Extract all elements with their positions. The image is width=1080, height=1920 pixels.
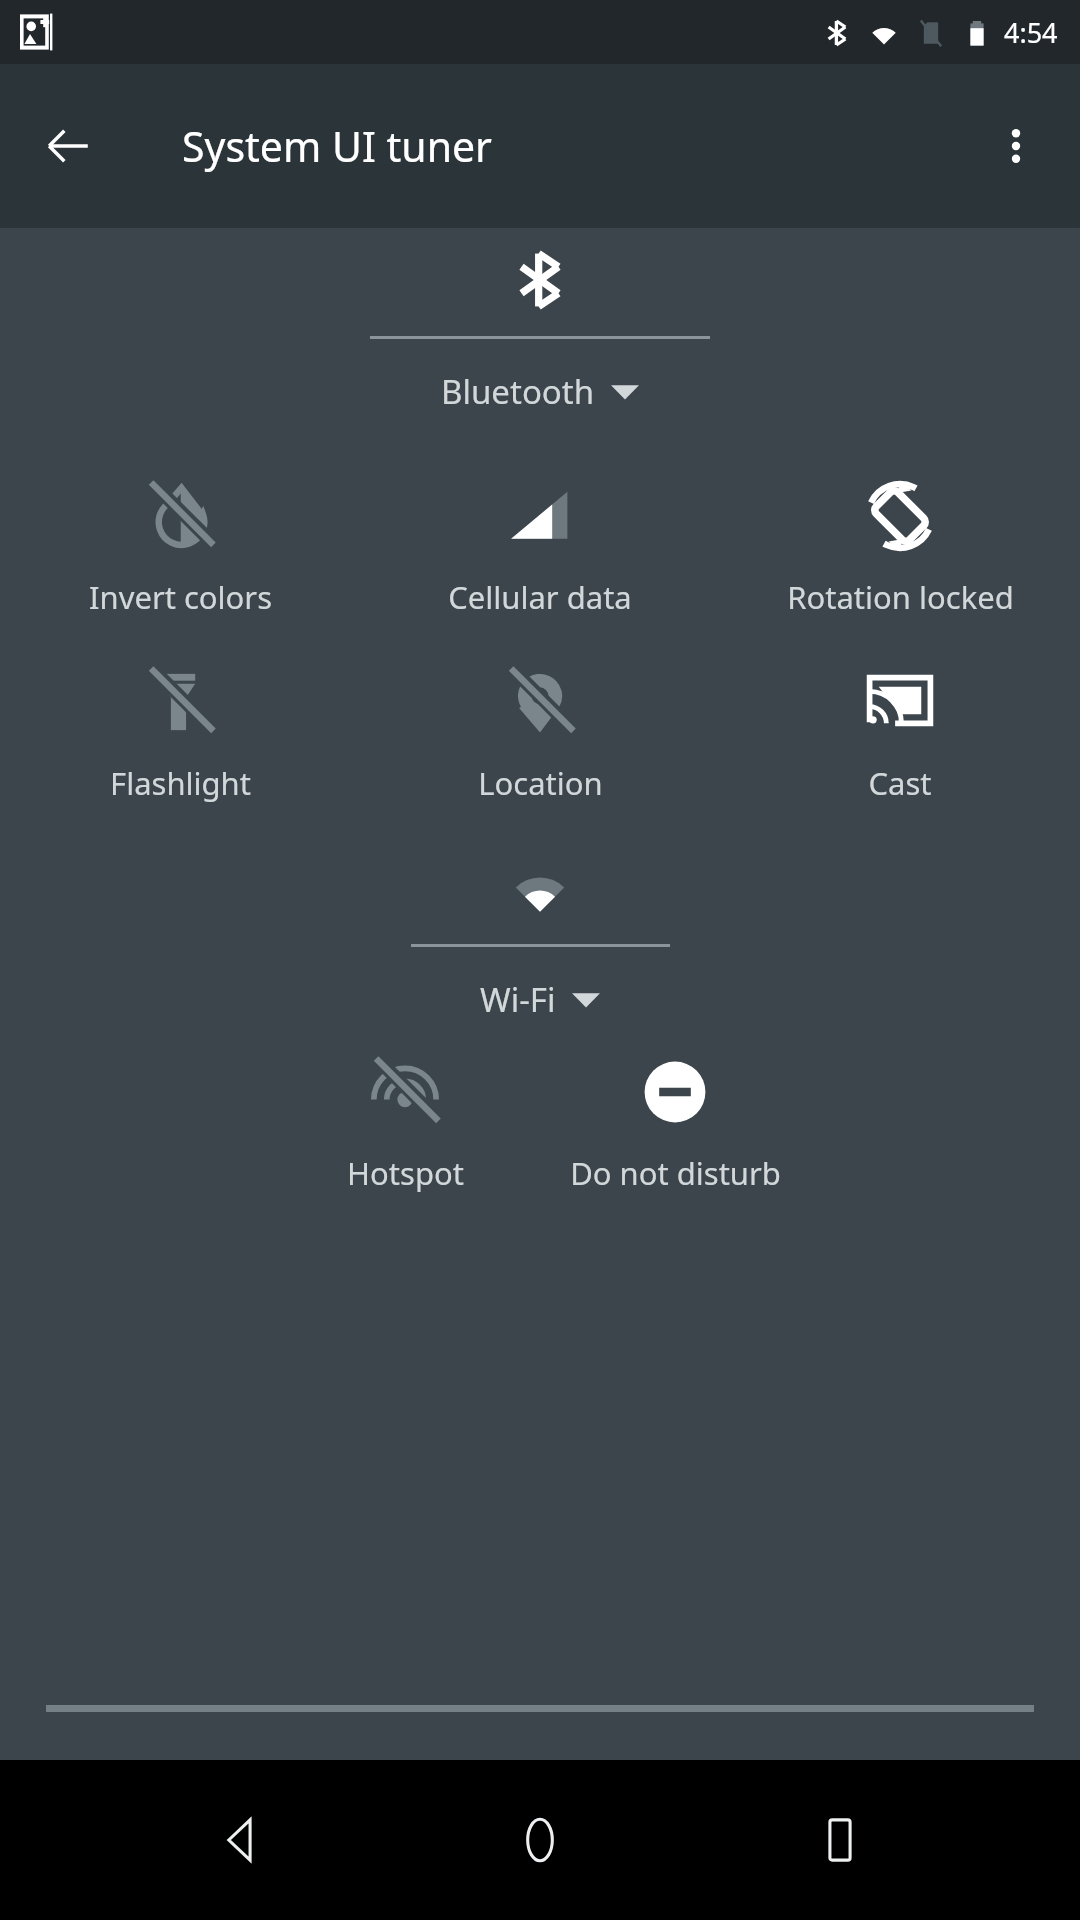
button[interactable]: Back bbox=[22, 100, 114, 192]
staticText: Flashlight bbox=[110, 762, 251, 804]
button[interactable]: More options bbox=[970, 100, 1062, 192]
button[interactable]: Do not disturb bbox=[540, 1054, 810, 1194]
staticText: Bluetooth bbox=[441, 369, 595, 414]
button[interactable]: Cast bbox=[720, 664, 1080, 804]
button[interactable]: Hotspot bbox=[270, 1054, 540, 1194]
staticText: 4:54 bbox=[1004, 14, 1058, 51]
button[interactable]: Flashlight bbox=[0, 664, 360, 804]
staticText: Cellular data bbox=[448, 576, 632, 618]
button[interactable]: Home bbox=[480, 1780, 600, 1900]
staticText: Rotation locked bbox=[787, 576, 1014, 618]
button[interactable]: Wi-Fi bbox=[0, 848, 1080, 1022]
staticText: Invert colors bbox=[89, 576, 272, 618]
button[interactable]: Recents bbox=[780, 1780, 900, 1900]
button[interactable]: Bluetooth bbox=[0, 240, 1080, 414]
staticText: Hotspot bbox=[347, 1152, 464, 1194]
staticText: System UI tuner bbox=[182, 118, 493, 174]
button[interactable]: Location bbox=[360, 664, 720, 804]
staticText: Do not disturb bbox=[570, 1152, 781, 1194]
button[interactable]: Invert colors bbox=[0, 478, 360, 618]
staticText: Wi-Fi bbox=[480, 977, 556, 1022]
staticText: Location bbox=[478, 762, 603, 804]
button[interactable]: Rotation locked bbox=[720, 478, 1080, 618]
staticText: Cast bbox=[868, 762, 932, 804]
button[interactable]: Back bbox=[180, 1780, 300, 1900]
button[interactable]: Cellular data bbox=[360, 478, 720, 618]
